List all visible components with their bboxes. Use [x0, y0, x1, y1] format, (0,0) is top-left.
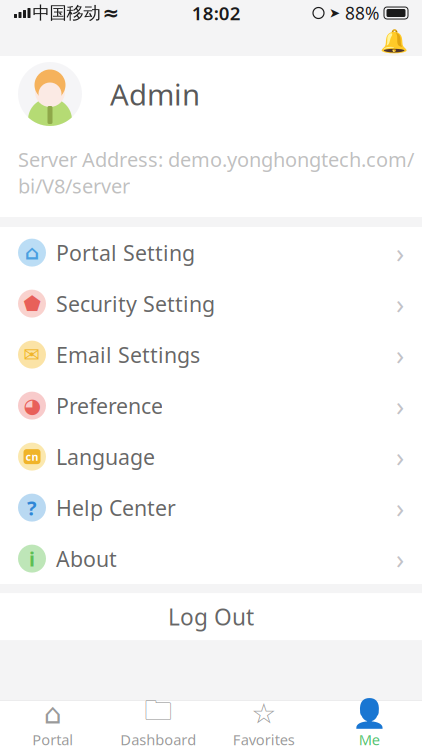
staticText: Portal [32, 730, 73, 749]
staticText: ⌂ [25, 241, 39, 264]
staticText: i [29, 545, 35, 572]
button[interactable]: ☆ [211, 701, 316, 750]
button[interactable]: Log Out [0, 593, 422, 640]
button[interactable]: ◕ [0, 380, 422, 431]
staticText: 👤 [352, 698, 387, 730]
staticText: 🔔 [380, 28, 408, 54]
staticText: ⬟ [23, 292, 40, 315]
staticText: ⌂ [44, 698, 62, 730]
staticText: ≈ [102, 2, 119, 24]
staticText: ✉ [23, 343, 40, 366]
button[interactable]: ⬟ [0, 278, 422, 329]
button[interactable]: ⌂ [0, 701, 105, 750]
staticText: Security Setting [56, 289, 215, 318]
staticText: Email Settings [56, 340, 200, 369]
button[interactable]: ? [0, 482, 422, 533]
staticText: › [396, 337, 404, 372]
staticText: cn [25, 449, 38, 464]
staticText: ☆ [251, 698, 276, 730]
staticText: Admin [110, 74, 200, 113]
staticText: 中国移动 [32, 2, 100, 24]
button[interactable]: i [0, 533, 422, 584]
staticText: › [396, 439, 404, 474]
staticText: › [396, 541, 404, 576]
staticText: Preference [56, 391, 163, 420]
staticText: Me [359, 730, 380, 749]
staticText: › [396, 490, 404, 525]
button[interactable]: ✉ [0, 329, 422, 380]
button[interactable]: ⌂ [0, 227, 422, 278]
staticText: Server Address: demo.yonghongtech.com/bi… [18, 146, 414, 199]
staticText: 18:02 [192, 1, 241, 25]
staticText: ? [27, 494, 37, 521]
staticText: › [396, 388, 404, 423]
button[interactable]: 🗀 [105, 701, 211, 750]
staticText: ◕ [23, 394, 40, 417]
staticText: › [396, 286, 404, 321]
staticText: Log Out [168, 602, 254, 632]
staticText: › [396, 235, 404, 270]
button[interactable]: cn [0, 431, 422, 482]
staticText: 88% [345, 1, 379, 24]
staticText: 🗀 [144, 691, 172, 737]
staticText: Portal Setting [56, 238, 195, 267]
staticText: ➤ [329, 5, 340, 20]
button[interactable]: 👤 [316, 701, 422, 750]
staticText: About [56, 544, 117, 573]
staticText: Language [56, 442, 155, 471]
staticText: Favorites [233, 730, 295, 749]
button[interactable]: Notifications [374, 26, 414, 56]
staticText: Help Center [56, 493, 176, 522]
staticText: Dashboard [120, 730, 196, 749]
